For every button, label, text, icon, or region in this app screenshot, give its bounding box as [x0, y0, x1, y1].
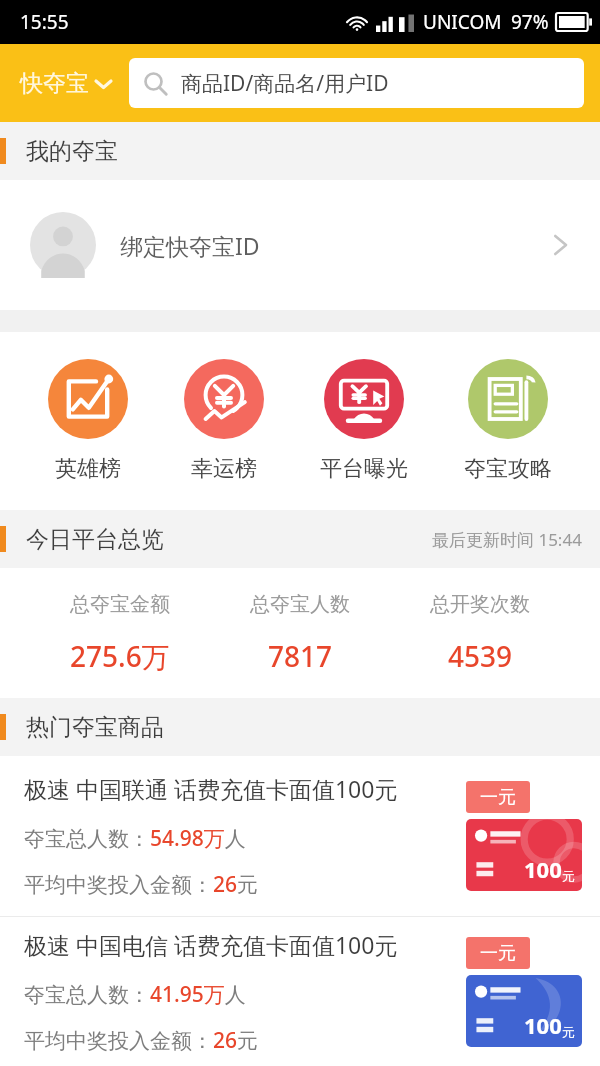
button[interactable]: 快夺宝: [16, 61, 115, 106]
other: 打开: [552, 230, 570, 260]
button[interactable]: 绑定快夺宝ID: [0, 180, 600, 310]
button[interactable]: 总夺宝金额: [60, 592, 180, 675]
staticText: 元: [562, 1024, 575, 1040]
button[interactable]: 夺宝攻略: [456, 355, 560, 487]
button[interactable]: 极速 中国电信 话费充值卡面值100元: [0, 917, 600, 1066]
staticText: 元: [562, 868, 575, 884]
staticText: 极速 中国电信 话费充值卡面值100元: [24, 929, 398, 960]
staticText: 今日平台总览: [26, 525, 164, 554]
button[interactable]: 总夺宝人数: [240, 592, 360, 675]
staticText: 一元: [480, 942, 516, 965]
staticText: 275.6万: [70, 637, 170, 675]
staticText: 最后更新时间 15:44: [432, 528, 582, 551]
staticText: 绑定快夺宝ID: [120, 230, 552, 261]
staticText: 幸运榜: [191, 455, 257, 483]
staticText: 总夺宝人数: [250, 592, 350, 617]
staticText: 4539: [448, 637, 513, 675]
staticText: 15:55: [20, 9, 69, 35]
staticText: 快夺宝: [20, 69, 89, 98]
button[interactable]: 总开奖次数: [420, 592, 540, 675]
button[interactable]: 极速 中国联通 话费充值卡面值100元: [0, 756, 600, 916]
staticText: 夺宝总人数：54.98万人: [24, 824, 246, 853]
staticText: 总开奖次数: [430, 592, 530, 617]
staticText: 一元: [480, 786, 516, 809]
staticText: 平台曝光: [320, 455, 408, 483]
staticText: 我的夺宝: [26, 137, 118, 166]
button[interactable]: 英雄榜: [40, 355, 136, 487]
staticText: 热门夺宝商品: [26, 713, 164, 742]
button[interactable]: 商品ID/商品名/用户ID: [129, 58, 584, 108]
staticText: 总夺宝金额: [70, 592, 170, 617]
staticText: 7817: [268, 637, 333, 675]
staticText: 100: [524, 854, 562, 884]
staticText: 夺宝攻略: [464, 455, 552, 483]
button[interactable]: 平台曝光: [312, 355, 416, 487]
staticText: 极速 中国联通 话费充值卡面值100元: [24, 773, 398, 804]
staticText: UNICOM: [423, 9, 502, 35]
button[interactable]: 幸运榜: [176, 355, 272, 487]
staticText: 97%: [511, 9, 549, 35]
staticText: 平均中奖投入金额：26元: [24, 870, 259, 899]
staticText: 夺宝总人数：41.95万人: [24, 980, 246, 1009]
staticText: 平均中奖投入金额：26元: [24, 1026, 259, 1055]
staticText: 商品ID/商品名/用户ID: [181, 69, 389, 98]
staticText: 英雄榜: [55, 455, 121, 483]
staticText: 100: [524, 1010, 562, 1040]
